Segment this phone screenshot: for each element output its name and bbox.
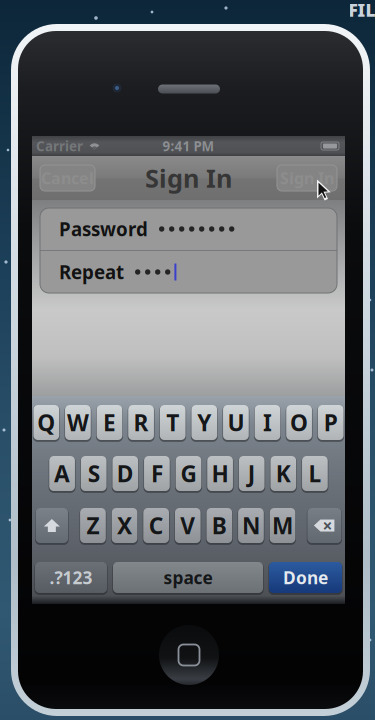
staticText: X	[117, 510, 132, 540]
staticText: H	[212, 458, 229, 488]
staticText: B	[212, 510, 227, 540]
button[interactable]: I	[255, 405, 280, 440]
button[interactable]: E	[97, 405, 122, 440]
button[interactable]: S	[81, 456, 107, 491]
button[interactable]: Z	[80, 508, 106, 543]
button[interactable]	[36, 508, 68, 543]
button[interactable]: Y	[191, 405, 217, 440]
staticText: K	[276, 458, 291, 488]
button[interactable]: T	[160, 405, 186, 440]
staticText: 9:41 PM	[162, 137, 214, 155]
staticText: Y	[197, 407, 211, 437]
button[interactable]: W	[65, 405, 91, 440]
button[interactable]: space	[113, 562, 263, 593]
staticText: Sign In	[145, 161, 232, 195]
staticText: ×	[322, 514, 332, 537]
staticText: T	[166, 407, 179, 437]
staticText: Z	[86, 510, 99, 540]
staticText: Repeat	[59, 260, 124, 284]
staticText: U	[227, 407, 244, 437]
button[interactable]: U	[223, 405, 249, 440]
staticText: J	[248, 458, 256, 488]
button[interactable]: A	[49, 456, 75, 491]
staticText: A	[54, 458, 70, 488]
button[interactable]: N	[238, 508, 264, 543]
staticText: S	[88, 458, 100, 488]
staticText: D	[117, 458, 134, 488]
button[interactable]: X	[112, 508, 137, 543]
staticText: .?123	[49, 566, 92, 589]
staticText: M	[272, 510, 293, 540]
staticText: Sign In	[280, 167, 334, 189]
staticText: space	[163, 566, 212, 589]
staticText: R	[134, 407, 149, 437]
button[interactable]: R	[128, 405, 154, 440]
button[interactable]: P	[318, 405, 344, 440]
staticText: V	[180, 510, 195, 540]
button[interactable]: ×	[307, 508, 341, 543]
staticText: G	[180, 458, 196, 488]
button[interactable]: Q	[33, 405, 59, 440]
staticText: Password	[59, 217, 148, 241]
button[interactable]: L	[302, 456, 328, 491]
staticText: W	[67, 407, 89, 437]
button[interactable]: H	[207, 456, 233, 491]
staticText: F	[151, 458, 163, 488]
button[interactable]: G	[176, 456, 201, 491]
staticText: Q	[37, 407, 55, 437]
staticText: O	[290, 407, 308, 437]
staticText: Cancel	[41, 167, 94, 189]
button[interactable]: Done	[269, 562, 342, 593]
button[interactable]: Sign In	[277, 165, 337, 191]
button[interactable]: J	[239, 456, 265, 491]
button[interactable]: K	[270, 456, 296, 491]
staticText: Carrier	[36, 137, 83, 155]
button[interactable]: Cancel	[40, 165, 95, 191]
button[interactable]: V	[175, 508, 201, 543]
button[interactable]: B	[206, 508, 232, 543]
button[interactable]: M	[270, 508, 295, 543]
button[interactable]: F	[144, 456, 170, 491]
staticText: C	[149, 510, 164, 540]
staticText: P	[324, 407, 338, 437]
button[interactable]: C	[143, 508, 169, 543]
staticText: FIL	[348, 0, 375, 21]
button[interactable]: O	[286, 405, 312, 440]
staticText: N	[242, 510, 260, 540]
staticText: Done	[283, 566, 328, 589]
button[interactable]: .?123	[35, 562, 107, 593]
staticText: E	[103, 407, 116, 437]
button[interactable]: D	[112, 456, 138, 491]
staticText: L	[308, 458, 321, 488]
staticText: I	[263, 407, 272, 437]
